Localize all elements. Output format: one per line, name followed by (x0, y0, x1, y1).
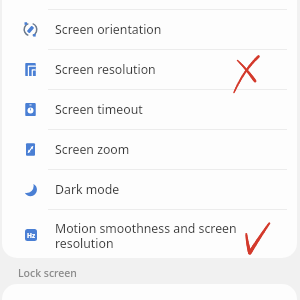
staticText: Screen zoom (55, 141, 130, 158)
button[interactable]: Screen zoom (2, 129, 297, 169)
button[interactable]: Screen orientation (2, 9, 297, 49)
staticText: Dark mode (55, 181, 120, 198)
button[interactable]: Screen resolution (2, 49, 297, 89)
button[interactable]: Hz (2, 209, 297, 258)
staticText: Screen orientation (55, 21, 162, 38)
staticText: Hz (27, 231, 36, 240)
staticText: Lock screen (18, 266, 77, 280)
staticText: Screen timeout (55, 101, 143, 118)
button[interactable]: Dark mode (2, 169, 297, 209)
staticText: Screen resolution (55, 61, 156, 78)
staticText: Motion smoothness and screen resolution (55, 220, 250, 252)
button[interactable]: Screen timeout (2, 89, 297, 129)
